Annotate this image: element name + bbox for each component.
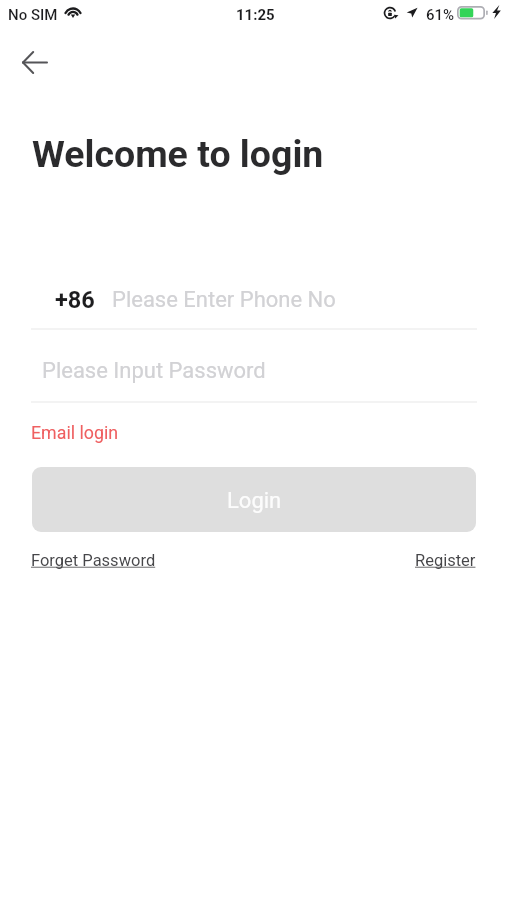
button[interactable]: Register	[407, 543, 484, 578]
staticText: 11:25	[236, 6, 275, 24]
button[interactable]: Forget Password	[23, 543, 164, 578]
button[interactable]: Login	[32, 467, 476, 532]
staticText: No SIM	[8, 6, 58, 24]
button[interactable]: Please Input Password	[31, 348, 477, 392]
staticText: Please Enter Phone No	[112, 287, 336, 313]
staticText: Welcome to login	[32, 132, 324, 176]
staticText: 61%	[426, 6, 455, 24]
button[interactable]: Email login	[23, 414, 127, 451]
staticText: Register	[415, 551, 476, 570]
staticText: +86	[55, 286, 95, 314]
staticText: Login	[227, 488, 282, 514]
button[interactable]: Back	[13, 40, 57, 84]
staticText: Please Input Password	[42, 358, 266, 384]
staticText: Email login	[31, 422, 119, 443]
button[interactable]: Please Enter Phone No	[101, 278, 477, 322]
button[interactable]: +86	[31, 278, 101, 322]
staticText: Forget Password	[31, 551, 156, 570]
